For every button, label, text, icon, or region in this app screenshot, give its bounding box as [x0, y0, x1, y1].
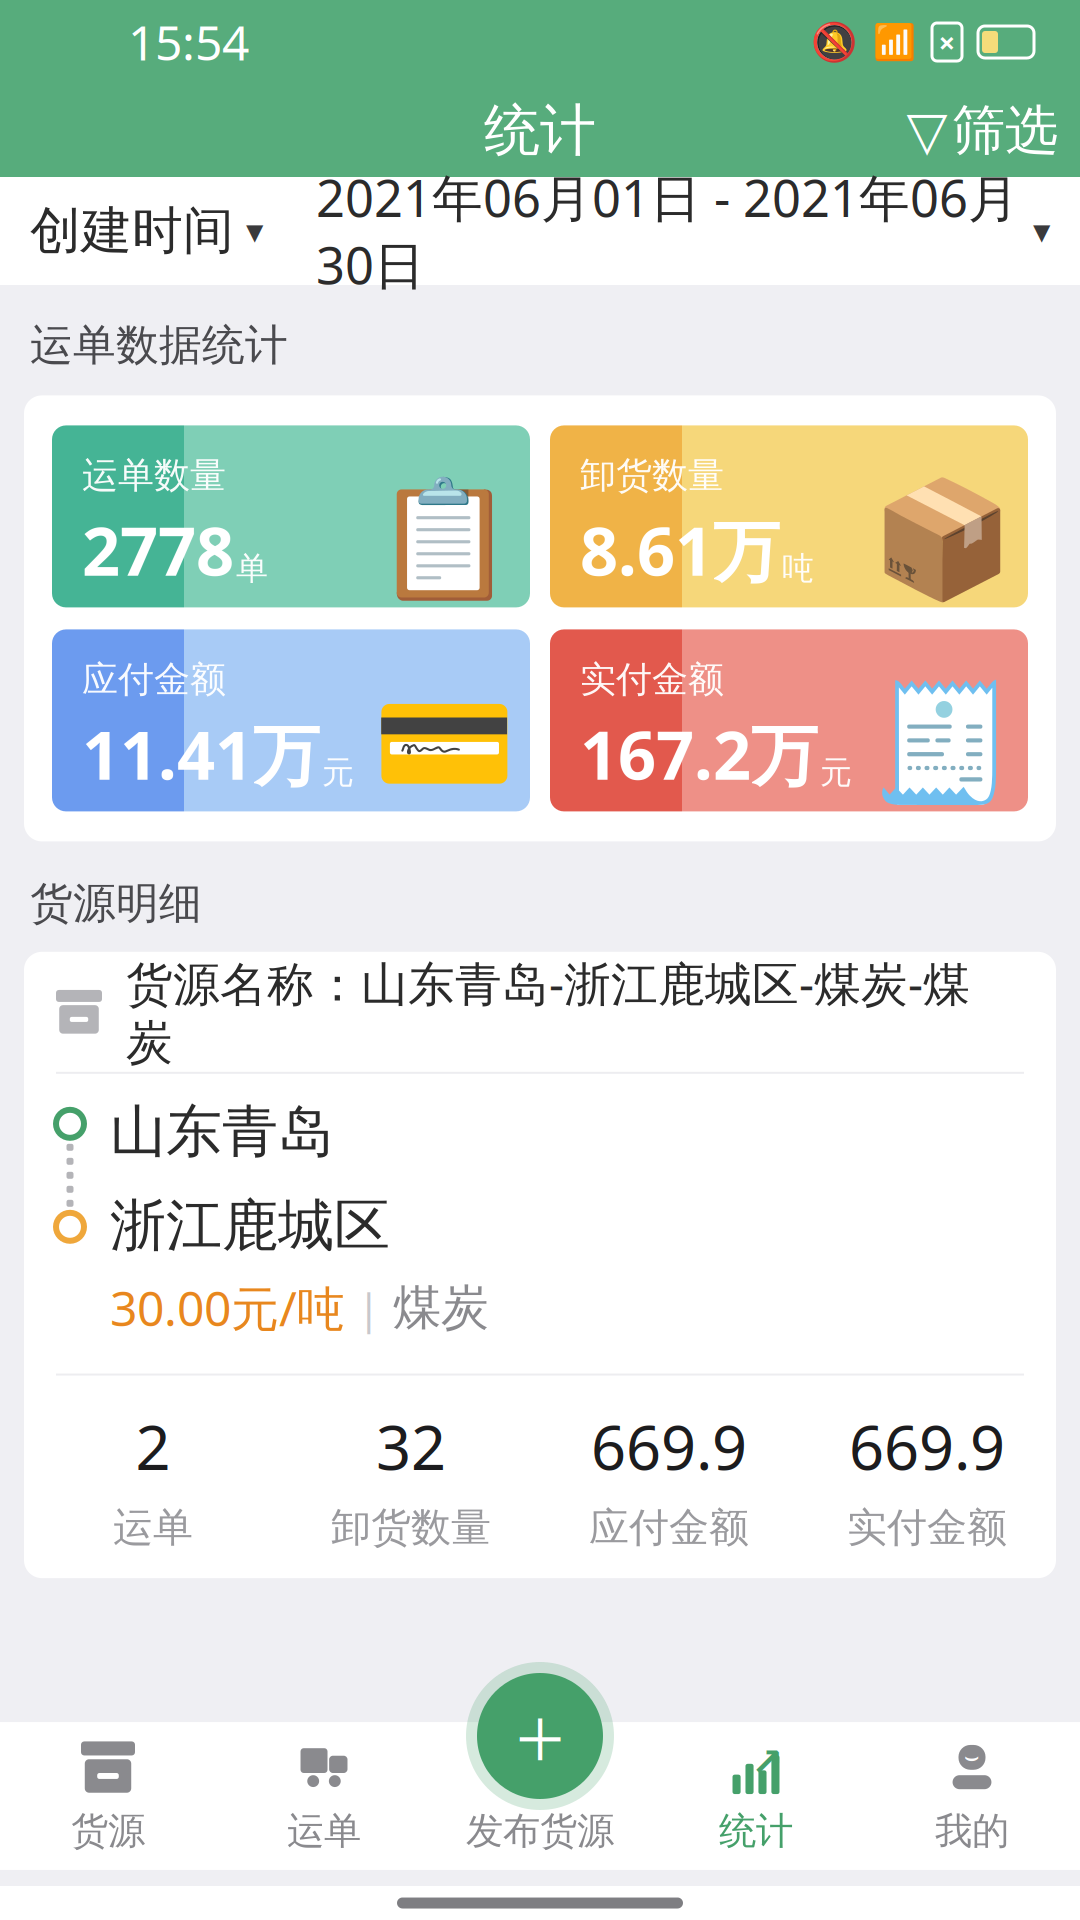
staticText: 创建时间	[30, 200, 234, 262]
staticText: 实付金额	[580, 657, 724, 702]
button[interactable]: ↗	[648, 1722, 864, 1870]
staticText: 货源	[71, 1808, 145, 1854]
staticText: 💳	[373, 678, 516, 809]
staticText: ▾	[246, 211, 263, 251]
staticText: 2	[135, 1406, 170, 1487]
staticText: 167.2万	[580, 710, 818, 798]
button[interactable]: 发布货源	[466, 1662, 614, 1810]
button[interactable]: 货源	[0, 1722, 216, 1870]
staticText: 运单数量	[82, 453, 226, 498]
staticText: 15:54	[128, 10, 249, 74]
staticText: 应付金额	[82, 657, 226, 702]
button[interactable]: 运单	[216, 1722, 432, 1870]
staticText: ⌣	[964, 1746, 980, 1769]
staticText: 卸货数量	[331, 1503, 491, 1552]
staticText: ↗	[751, 1740, 783, 1784]
staticText: 32	[376, 1406, 446, 1487]
staticText: 我的	[935, 1808, 1009, 1854]
staticText: 煤炭	[393, 1278, 489, 1337]
staticText: 发布货源	[466, 1808, 614, 1854]
button[interactable]: 货源名称：山东青岛-浙江鹿城区-煤炭-煤炭	[24, 952, 1056, 1578]
staticText: 统计	[719, 1808, 793, 1854]
staticText: 吨	[782, 549, 814, 588]
staticText: +	[515, 1678, 565, 1794]
staticText: 2778	[82, 506, 234, 594]
staticText: 实付金额	[847, 1503, 1007, 1552]
button[interactable]: ⌣	[864, 1722, 1080, 1870]
staticText: 📶	[873, 22, 916, 62]
staticText: 2021年06月01日 - 2021年06月30日	[316, 164, 1019, 298]
staticText: ×	[938, 22, 955, 61]
button[interactable]: 创建时间	[0, 178, 263, 284]
staticText: 运单	[113, 1503, 193, 1552]
staticText: ▽	[906, 100, 947, 161]
staticText: 元	[322, 753, 354, 792]
staticText: 单	[236, 549, 268, 588]
staticText: 货源名称：山东青岛-浙江鹿城区-煤炭-煤炭	[126, 952, 970, 1071]
staticText: 应付金额	[589, 1503, 749, 1552]
staticText: 元	[820, 753, 852, 792]
staticText: 运单	[287, 1808, 361, 1854]
staticText: 山东青岛	[110, 1097, 334, 1166]
staticText: |	[357, 1279, 381, 1336]
staticText: ⌣	[532, 1746, 548, 1769]
staticText: 8.61万	[580, 506, 780, 594]
staticText: 货源明细	[30, 877, 202, 930]
staticText: 📦	[871, 474, 1014, 605]
staticText: 30.00元/吨	[110, 1276, 345, 1339]
staticText: 浙江鹿城区	[110, 1191, 390, 1260]
staticText: ▾	[1033, 211, 1050, 251]
staticText: 运单数据统计	[30, 319, 288, 371]
staticText: 统计	[484, 96, 596, 165]
staticText: 669.9	[591, 1406, 747, 1487]
button[interactable]: ▽	[888, 84, 1080, 177]
staticText: 筛选	[952, 98, 1058, 163]
staticText: 669.9	[849, 1406, 1005, 1487]
button[interactable]: 2021年06月01日 - 2021年06月30日	[316, 142, 1080, 320]
staticText: 🧾	[871, 678, 1014, 809]
staticText: 🔕	[811, 21, 857, 63]
staticText: 📋	[373, 474, 516, 605]
staticText: 11.41万	[82, 710, 320, 798]
button[interactable]: ⌣	[432, 1722, 648, 1870]
staticText: 卸货数量	[580, 453, 724, 498]
